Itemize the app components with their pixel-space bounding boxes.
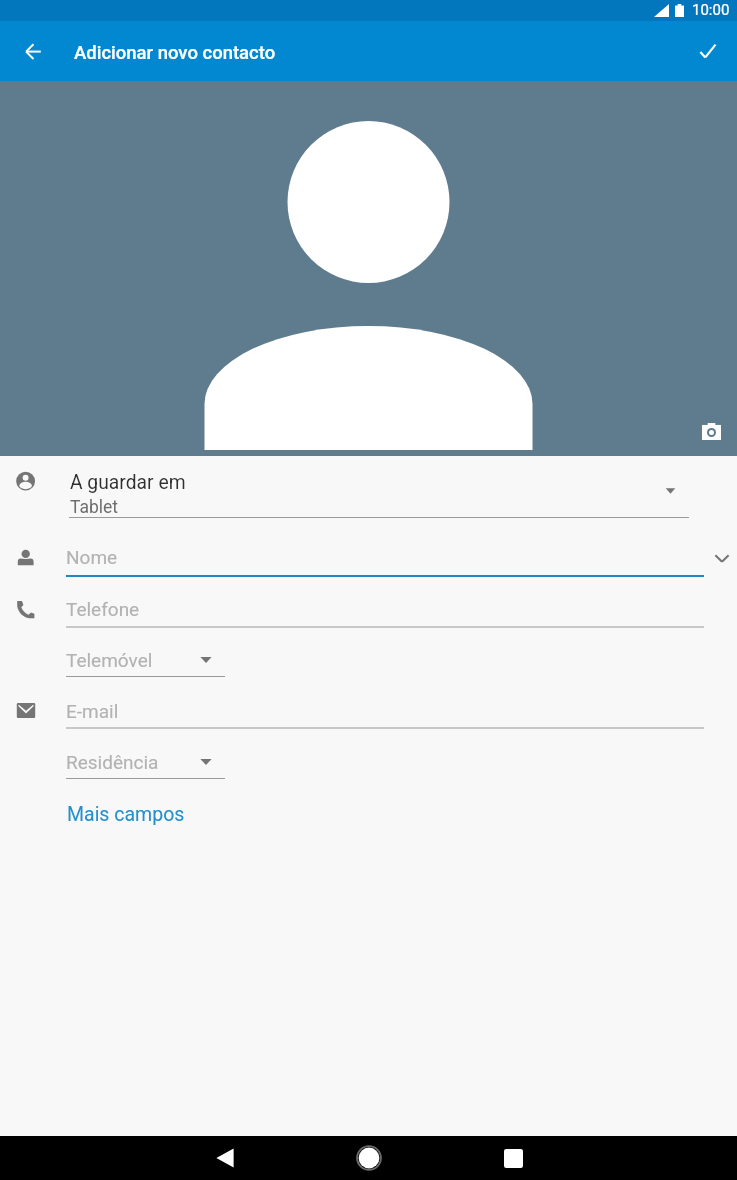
button[interactable]: Nome: [0, 526, 737, 578]
button[interactable]: Back: [154, 1136, 296, 1180]
staticText: Telefone: [66, 598, 140, 620]
staticText: A guardar em: [70, 471, 186, 494]
button[interactable]: Adicionar fotografia: [0, 81, 737, 456]
staticText: Mais campos: [67, 803, 185, 826]
button[interactable]: Residência: [0, 733, 235, 779]
staticText: 10:00: [692, 1, 730, 19]
button[interactable]: E-mail: [0, 682, 712, 729]
staticText: E-mail: [66, 700, 119, 722]
staticText: Adicionar novo contacto: [74, 42, 276, 64]
button[interactable]: A guardar em: [0, 458, 700, 518]
button[interactable]: Tirar fotografia: [697, 417, 725, 445]
button[interactable]: Navigate up: [11, 29, 55, 73]
staticText: Residência: [66, 751, 159, 773]
button[interactable]: Mais campos: [60, 797, 195, 831]
button[interactable]: Telefone: [0, 580, 712, 628]
button[interactable]: Telemóvel: [0, 632, 235, 677]
staticText: Telemóvel: [66, 649, 153, 671]
staticText: Nome: [66, 546, 118, 568]
button[interactable]: Guardar contacto: [682, 29, 726, 73]
staticText: Tablet: [70, 497, 119, 518]
button[interactable]: Recent apps: [442, 1136, 584, 1180]
button[interactable]: Home: [298, 1136, 440, 1180]
